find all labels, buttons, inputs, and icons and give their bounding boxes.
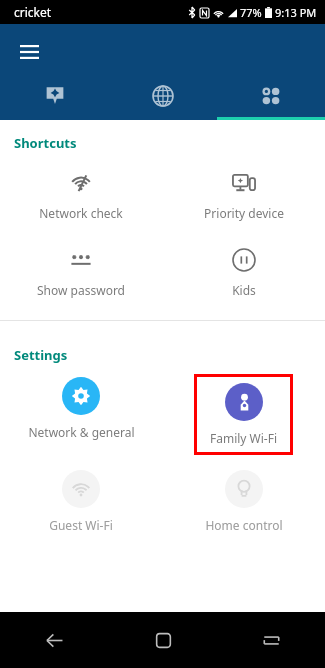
- staticText: Network & general: [28, 424, 135, 440]
- staticText: Priority device: [204, 205, 284, 221]
- button[interactable]: Show password: [0, 241, 162, 304]
- button[interactable]: Recents: [217, 612, 325, 668]
- staticText: 9:13 PM: [275, 5, 317, 20]
- button[interactable]: Kids: [162, 241, 325, 304]
- staticText: Show password: [37, 282, 125, 298]
- staticText: Settings: [14, 346, 68, 364]
- button[interactable]: Boost: [0, 72, 109, 120]
- button[interactable]: Settings tab: [217, 72, 325, 120]
- button[interactable]: Family Wi-Fi: [197, 377, 290, 452]
- button[interactable]: Guest Wi-Fi: [0, 467, 162, 536]
- staticText: Home control: [205, 517, 283, 533]
- staticText: cricket: [14, 4, 52, 20]
- staticText: Family Wi-Fi: [210, 430, 278, 446]
- staticText: Network check: [39, 205, 123, 221]
- button[interactable]: Internet: [109, 72, 217, 120]
- staticText: Kids: [232, 282, 256, 298]
- button[interactable]: Menu: [10, 32, 48, 72]
- staticText: Guest Wi-Fi: [49, 517, 113, 533]
- button[interactable]: Network check: [0, 164, 162, 227]
- button[interactable]: Network & general: [0, 374, 162, 443]
- button[interactable]: Home control: [162, 467, 325, 536]
- staticText: 77%: [240, 5, 262, 20]
- button[interactable]: Home: [109, 612, 217, 668]
- button[interactable]: Priority device: [162, 164, 325, 227]
- button[interactable]: Back: [0, 612, 109, 668]
- staticText: Shortcuts: [14, 134, 77, 152]
